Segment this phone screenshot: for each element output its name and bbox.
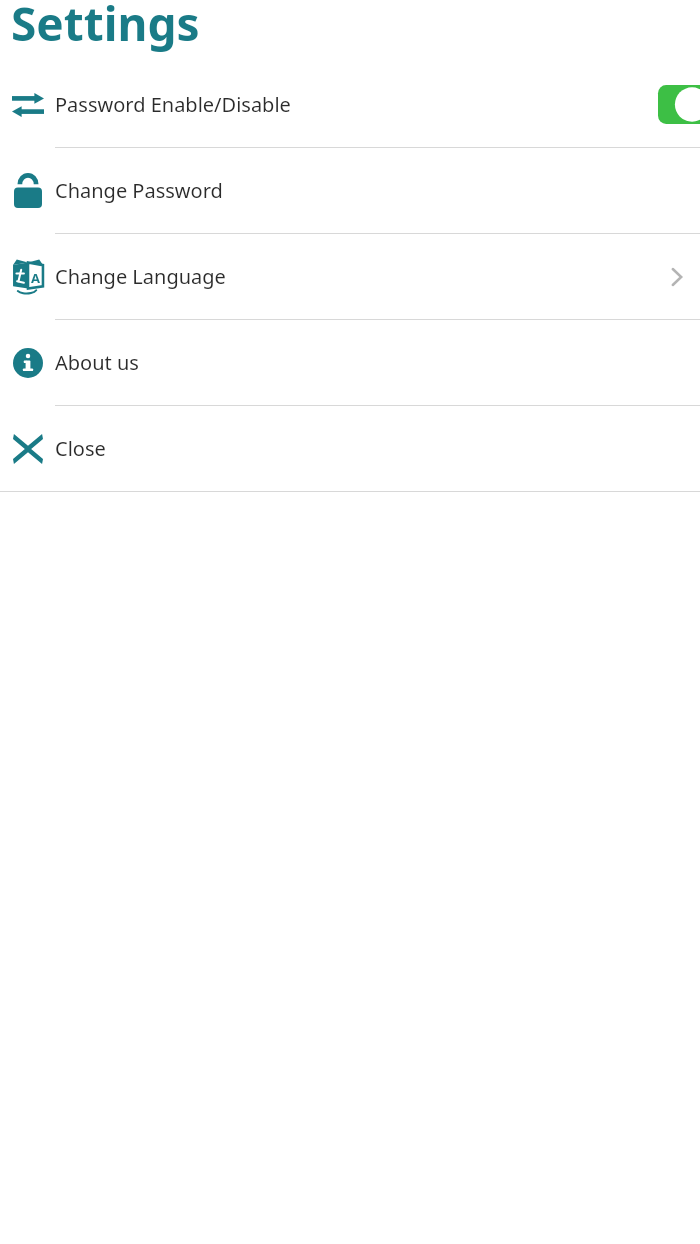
button[interactable]: Change Password — [0, 148, 700, 233]
button[interactable]: Password enable toggle — [658, 85, 700, 124]
button[interactable]: A — [0, 234, 700, 319]
staticText: Change Password — [55, 177, 700, 204]
button[interactable]: Password Enable/Disable — [0, 62, 700, 147]
staticText: Close — [55, 435, 700, 462]
staticText: Change Language — [55, 263, 666, 290]
staticText: A — [31, 269, 40, 287]
button[interactable]: Open language selection — [666, 266, 688, 288]
button[interactable]: Close — [0, 406, 700, 491]
staticText: About us — [55, 349, 700, 376]
staticText: Settings — [11, 0, 200, 54]
button[interactable]: About us — [0, 320, 700, 405]
staticText: Password Enable/Disable — [55, 91, 648, 118]
